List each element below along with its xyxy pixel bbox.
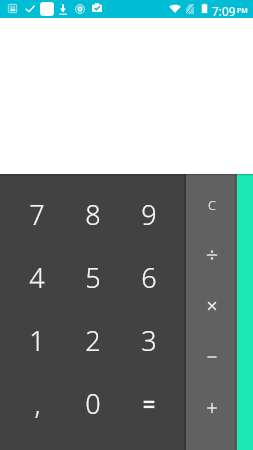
button[interactable]: Divide — [186, 229, 237, 280]
staticText: 4 — [29, 259, 45, 296]
staticText: 2 — [85, 322, 101, 359]
button[interactable]: 5 — [65, 246, 121, 309]
button[interactable]: Multiply — [186, 280, 237, 331]
staticText: 1 — [29, 322, 45, 359]
button[interactable]: 8 — [65, 183, 121, 246]
button[interactable]: 0 — [65, 372, 121, 435]
button[interactable]: 3 — [121, 309, 177, 372]
button[interactable]: 4 — [9, 246, 65, 309]
button[interactable]: 2 — [65, 309, 121, 372]
staticText: 7:09 — [212, 3, 236, 19]
staticText: PM — [237, 5, 248, 15]
staticText: 5 — [85, 259, 101, 296]
button[interactable]: , — [9, 372, 65, 435]
staticText: , — [34, 385, 41, 422]
button[interactable]: 9 — [121, 183, 177, 246]
button[interactable]: Subtract — [186, 331, 237, 382]
staticText: C — [208, 197, 216, 214]
staticText: 8 — [85, 196, 101, 233]
button[interactable]: Equals — [121, 372, 177, 435]
button[interactable]: 6 — [121, 246, 177, 309]
button[interactable]: 7 — [9, 183, 65, 246]
staticText: 0 — [85, 385, 101, 422]
button[interactable]: 1 — [9, 309, 65, 372]
staticText: 6 — [141, 259, 157, 296]
staticText: 7 — [29, 196, 45, 233]
button[interactable]: Add — [186, 382, 237, 433]
staticText: 3 — [141, 322, 157, 359]
staticText: 9 — [141, 196, 157, 233]
button[interactable]: Clear — [186, 178, 237, 229]
